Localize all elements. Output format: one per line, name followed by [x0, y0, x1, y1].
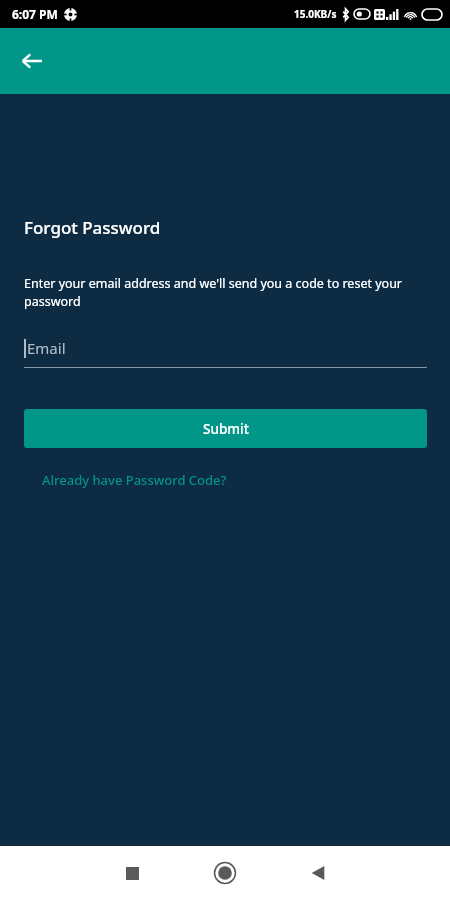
button[interactable]: Back [10, 39, 54, 83]
button[interactable]: Back [298, 853, 338, 893]
staticText: Enter your email address and we'll send … [24, 275, 428, 310]
button[interactable]: Email [24, 338, 427, 368]
staticText: Email [27, 338, 66, 358]
staticText: Already have Password Code? [42, 471, 227, 489]
button[interactable]: Recent apps [112, 853, 152, 893]
staticText: 15.0KB/s [294, 7, 337, 21]
button[interactable]: Home [205, 853, 245, 893]
button[interactable]: Already have Password Code? [36, 469, 233, 491]
button[interactable]: Submit [24, 409, 427, 448]
staticText: Forgot Password [24, 216, 161, 239]
staticText: 6:07 PM [12, 6, 58, 22]
staticText: Submit [203, 420, 249, 438]
